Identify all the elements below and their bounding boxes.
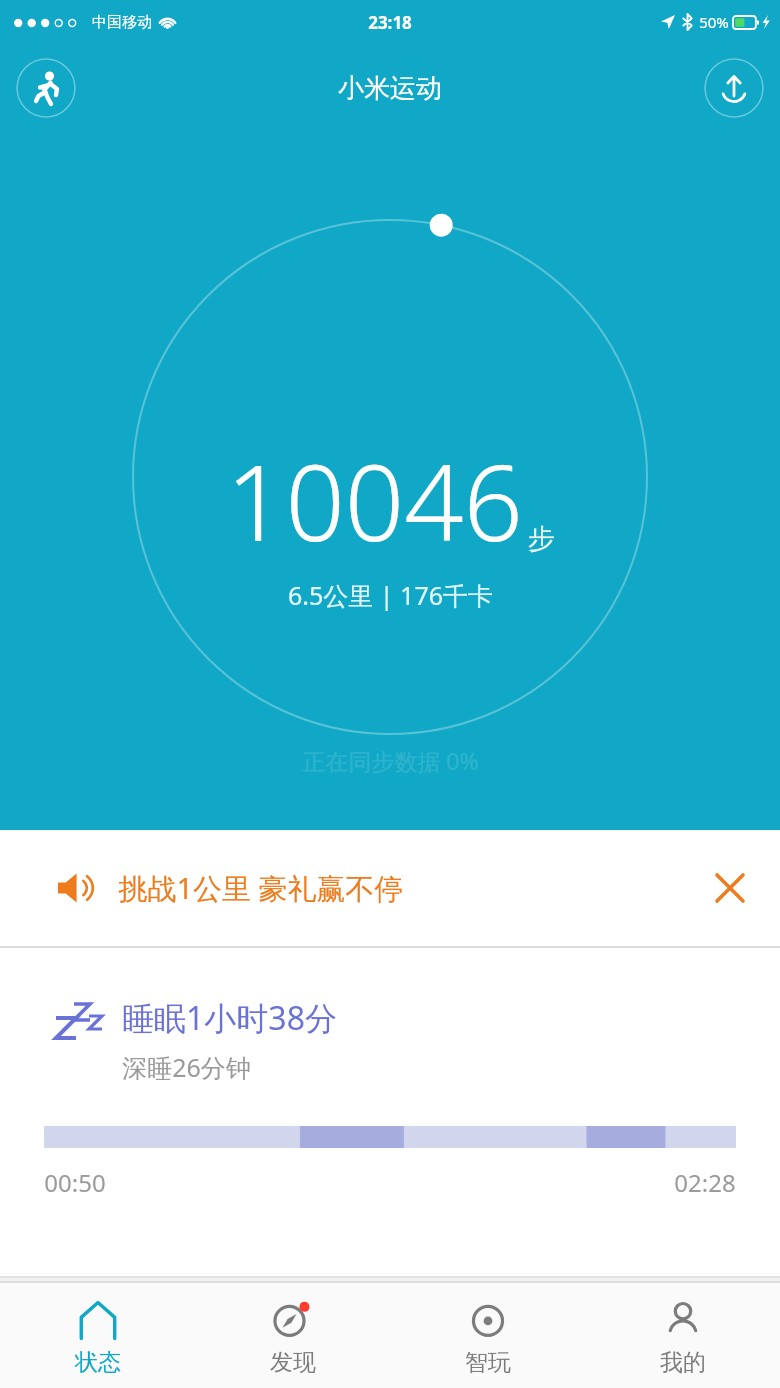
button[interactable]: 状态 (0, 1283, 195, 1388)
staticText: 发现 (270, 1348, 316, 1377)
staticText: 小米运动 (338, 72, 442, 105)
staticText: 挑战1公里 豪礼赢不停 (118, 868, 404, 908)
button[interactable]: 智玩 (390, 1283, 585, 1388)
staticText: 状态 (75, 1348, 121, 1377)
staticText: 我的 (660, 1348, 706, 1377)
button[interactable]: 睡眠1小时38分 (0, 948, 780, 1278)
button[interactable]: 挑战1公里 豪礼赢不停 (0, 830, 780, 946)
button[interactable]: Share (704, 58, 764, 118)
button[interactable]: 我的 (585, 1283, 780, 1388)
staticText: 睡眠1小时38分 (122, 996, 337, 1040)
button[interactable]: 发现 (195, 1283, 390, 1388)
staticText: 智玩 (465, 1348, 511, 1377)
staticText: 中国移动 (92, 13, 152, 32)
staticText: 深睡26分钟 (122, 1050, 251, 1084)
staticText: 步 (528, 522, 555, 556)
staticText: 6.5公里 | 176千卡 (288, 578, 493, 612)
staticText: 00:50 (44, 1166, 106, 1199)
button[interactable]: Run (16, 58, 76, 118)
staticText: 正在同步数据 0% (302, 745, 479, 776)
staticText: 10046 (226, 430, 523, 572)
staticText: 50% (699, 12, 729, 32)
staticText: 23:18 (368, 11, 412, 34)
button[interactable]: Close (692, 850, 768, 926)
staticText: 02:28 (674, 1166, 736, 1199)
